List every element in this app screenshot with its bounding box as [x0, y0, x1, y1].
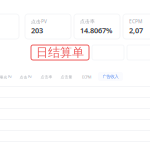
button[interactable]: 点击率: [74, 14, 120, 39]
staticText: ECPM: [82, 74, 91, 80]
button[interactable]: ECPM: [123, 14, 150, 39]
staticText: 点击量: [60, 75, 72, 79]
staticText: 203: [31, 25, 43, 35]
staticText: ECPM: [129, 18, 142, 25]
staticText: 曝光PV: [0, 74, 11, 80]
staticText: 14.8067%: [80, 25, 112, 35]
staticText: 点击PV: [19, 74, 31, 80]
staticText: 2,07: [129, 25, 143, 35]
button[interactable]: 点击率: [40, 75, 52, 79]
button[interactable]: 点击PV: [19, 74, 31, 80]
staticText: 点击率: [40, 75, 52, 79]
staticText: 点击率: [80, 18, 95, 24]
button[interactable]: 广告收入: [98, 72, 123, 81]
staticText: 日结算单: [36, 45, 84, 60]
button[interactable]: 曝光PV: [0, 74, 11, 80]
staticText: 广告收入: [102, 74, 118, 79]
button[interactable]: 日结算单: [31, 45, 89, 60]
staticText: 点击PV: [31, 18, 47, 25]
button[interactable]: 点击PV: [25, 14, 71, 39]
button[interactable]: 点击量: [60, 75, 72, 79]
button[interactable]: ECPM: [82, 74, 91, 80]
